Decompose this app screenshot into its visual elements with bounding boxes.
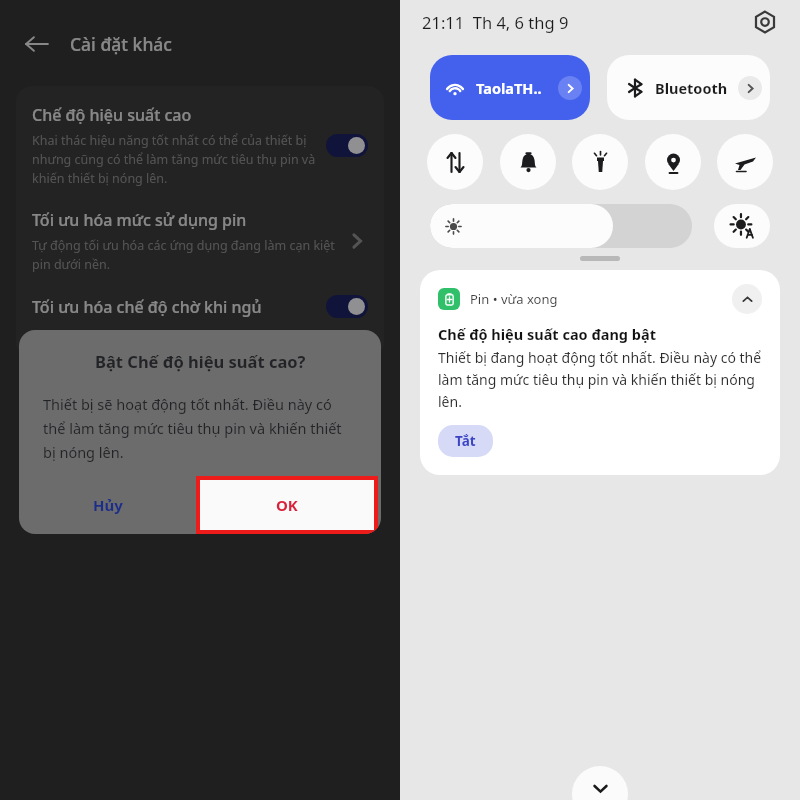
button[interactable]: Tối ưu hóa mức sử dụng pin [32,209,368,273]
button[interactable]: Toggle [326,134,368,157]
button[interactable]: Data [427,134,483,190]
staticText: TaolaTH.. [476,78,542,98]
staticText: Cài đặt khác [70,32,172,56]
staticText: Thiết bị đang hoạt động tốt nhất. Điều n… [438,348,762,411]
staticText: Khai thác hiệu năng tốt nhất có thể của … [32,132,316,187]
staticText: Chế độ hiệu suất cao đang bật [438,324,656,344]
button[interactable]: Back [24,31,50,57]
button[interactable]: Pin • vừa xong [420,270,780,475]
button[interactable]: Chế độ hiệu suất cao [32,104,368,187]
button[interactable]: Back [0,20,400,68]
button[interactable]: Settings [752,9,778,35]
button[interactable]: Auto brightness [714,204,770,248]
button[interactable]: OK [200,480,374,530]
button[interactable]: Ring [500,134,556,190]
staticText: Hủy [93,495,123,515]
button[interactable]: Collapse [732,284,762,314]
staticText: Bật Chế độ hiệu suất cao? [95,350,306,372]
button[interactable]: Flashlight [572,134,628,190]
button[interactable]: Brightness [430,204,692,248]
staticText: Tự động tối ưu hóa các ứng dụng đang làm… [32,237,336,273]
staticText: Pin • vừa xong [470,290,558,308]
button[interactable]: Bluetooth [607,55,770,120]
button[interactable]: Tắt [438,425,493,457]
staticText: OK [276,495,298,515]
button[interactable]: Toggle [326,295,368,318]
button[interactable]: Airplane mode [717,134,773,190]
staticText: Tối ưu hóa chế độ chờ khi ngủ [32,296,262,318]
staticText: Chế độ hiệu suất cao [32,104,192,126]
staticText: Thiết bị sẽ hoạt động tốt nhất. Điều này… [43,394,357,462]
staticText: Bluetooth [655,78,728,98]
button[interactable] [197,476,381,534]
button[interactable]: TaolaTH.. [430,55,590,120]
button[interactable]: Location [645,134,701,190]
button[interactable]: Collapse panel [572,766,628,800]
button[interactable]: Tối ưu hóa chế độ chờ khi ngủ [32,295,368,318]
button[interactable]: Hủy [19,476,197,534]
staticText: 21:11 Th 4, 6 thg 9 [422,11,569,33]
staticText: Tắt [455,432,476,450]
staticText: Tối ưu hóa mức sử dụng pin [32,209,247,231]
